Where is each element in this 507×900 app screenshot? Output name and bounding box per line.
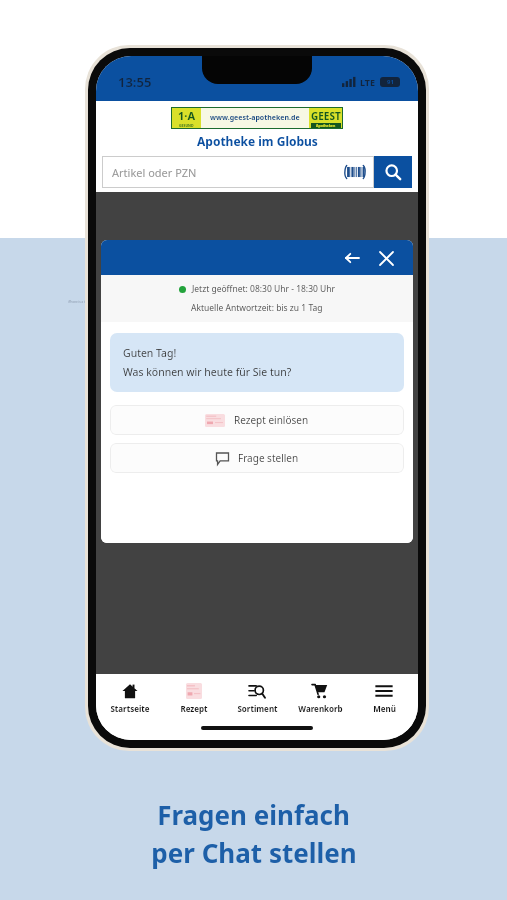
other: Barcode scannen xyxy=(346,165,364,179)
staticText: iPhone is a trademark of Apple Inc. xyxy=(68,300,118,304)
staticText: Artikel oder PZN xyxy=(112,165,346,180)
button[interactable]: Frage stellen xyxy=(110,443,404,473)
button[interactable]: Rezept xyxy=(163,679,225,717)
button[interactable]: Schließen xyxy=(373,245,399,271)
staticText: Menü xyxy=(373,703,396,714)
button[interactable]: Suchen xyxy=(374,156,412,188)
staticText: Rezept einlösen xyxy=(234,413,309,427)
staticText: LTE xyxy=(360,76,376,88)
button[interactable]: Zurück xyxy=(339,245,365,271)
staticText: 91 xyxy=(387,78,394,86)
staticText: per Chat stellen xyxy=(151,835,357,870)
staticText: Aktuelle Antwortzeit: bis zu 1 Tag xyxy=(191,302,323,314)
staticText: www.geest-apotheken.de xyxy=(210,113,300,123)
button[interactable]: Sortiment xyxy=(226,679,288,717)
staticText: Fragen einfach xyxy=(157,797,350,832)
button[interactable]: Menü xyxy=(353,679,415,717)
staticText: Was können wir heute für Sie tun? xyxy=(123,365,292,379)
staticText: Guten Tag! xyxy=(123,346,177,360)
staticText: GESUND xyxy=(179,123,194,128)
staticText: 1·A xyxy=(178,108,195,123)
staticText: Apotheken xyxy=(316,123,336,128)
button[interactable]: Warenkorb xyxy=(289,679,351,717)
staticText: Jetzt geöffnet: 08:30 Uhr - 18:30 Uhr xyxy=(192,283,336,295)
button[interactable]: Startseite xyxy=(99,679,161,717)
staticText: Frage stellen xyxy=(238,451,299,465)
button[interactable]: Rezept einlösen xyxy=(110,405,404,435)
staticText: 13:55 xyxy=(118,73,152,91)
staticText: Apotheke im Globus xyxy=(197,133,318,149)
button[interactable]: Artikel oder PZN xyxy=(102,156,374,188)
staticText: GEEST xyxy=(311,109,341,123)
staticText: Warenkorb xyxy=(298,703,343,714)
staticText: Rezept xyxy=(180,703,208,714)
staticText: Startseite xyxy=(110,703,150,714)
staticText: Sortiment xyxy=(237,703,278,714)
